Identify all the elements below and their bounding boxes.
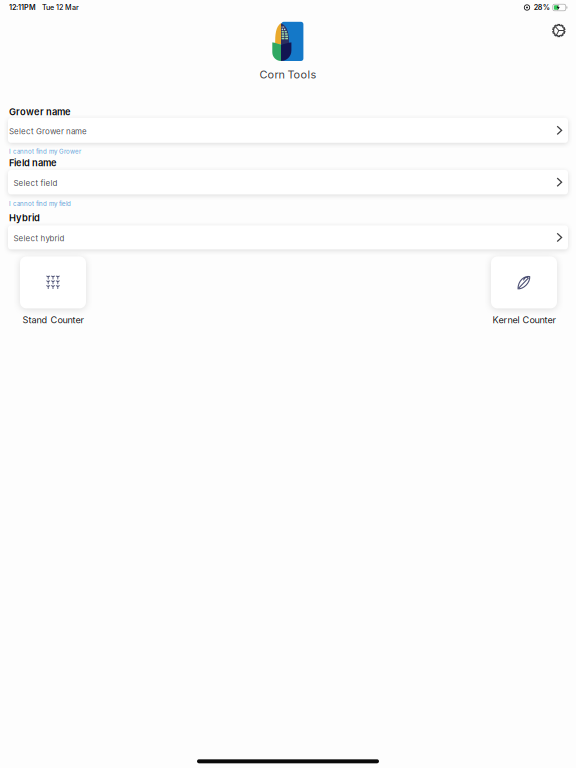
button[interactable]: Stand Counter [20, 256, 86, 325]
button[interactable]: I cannot find my Grower [0, 148, 576, 155]
staticText: Stand Counter [22, 314, 83, 325]
staticText: Grower name [9, 106, 71, 117]
button[interactable]: Kernel Counter [491, 256, 557, 325]
button[interactable]: Select field [0, 170, 576, 194]
button[interactable]: Settings [548, 19, 570, 41]
staticText: Corn Tools [259, 68, 316, 81]
staticText: Field name [9, 157, 57, 168]
staticText: I cannot find my Grower [9, 148, 81, 155]
staticText: I cannot find my field [9, 200, 71, 207]
staticText: 28% [534, 3, 550, 12]
staticText: 12:11PM [9, 3, 36, 12]
staticText: Kernel Counter [492, 314, 555, 325]
staticText: Select Grower name [9, 126, 87, 136]
button[interactable]: I cannot find my field [0, 200, 576, 207]
button[interactable]: Select Grower name [0, 118, 576, 143]
staticText: Hybrid [9, 212, 40, 224]
staticText: Tue 12 Mar [42, 3, 79, 12]
staticText: Select field [13, 178, 57, 188]
staticText: Select hybrid [13, 234, 64, 243]
button[interactable]: Select hybrid [0, 225, 576, 249]
